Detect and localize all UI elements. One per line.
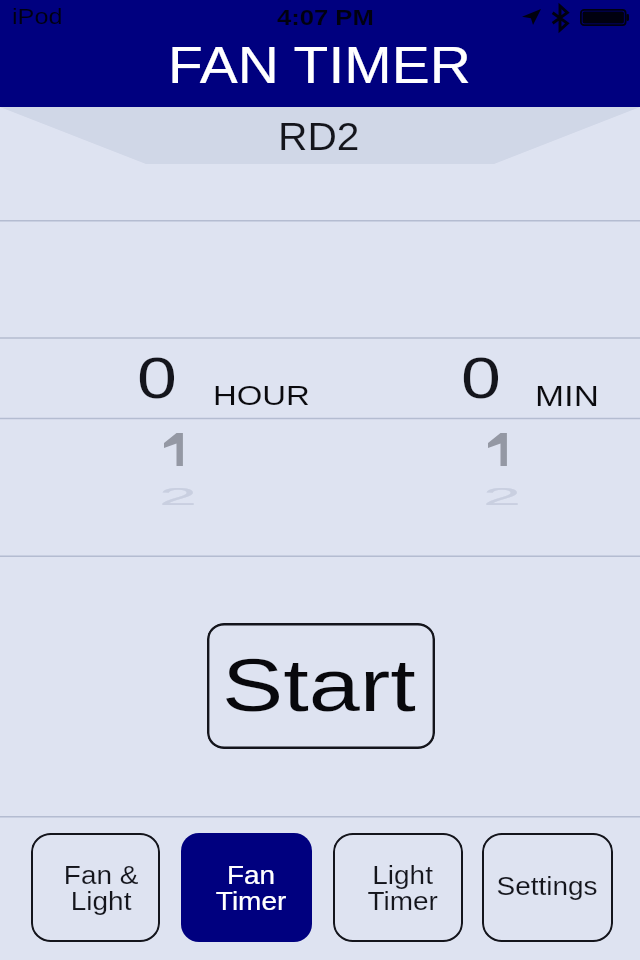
staticText: Fan Timer [190,861,312,916]
other: Location services [522,9,541,25]
staticText: FAN TIMER [168,37,472,94]
staticText: 4:07 PM [277,5,374,29]
staticText: Fan & Light [41,861,160,916]
staticText: 2 [159,483,198,510]
button[interactable]: Start [207,623,435,749]
staticText: Light Timer [342,861,463,916]
other: Bluetooth [552,6,568,30]
button[interactable]: Fan Timer [181,833,312,942]
staticText: 0 [461,346,502,409]
staticText: 2 [483,483,522,510]
other: Battery [580,9,629,26]
button[interactable]: Light Timer [333,833,463,942]
staticText: RD2 [278,115,360,157]
staticText: MIN [535,379,600,412]
staticText: 0 [137,346,178,409]
staticText: HOUR [213,380,311,411]
staticText: iPod [12,4,63,28]
staticText: Settings [486,872,608,901]
staticText: Start [222,643,416,726]
button[interactable]: Settings [482,833,613,942]
button[interactable]: Fan & Light [31,833,160,942]
